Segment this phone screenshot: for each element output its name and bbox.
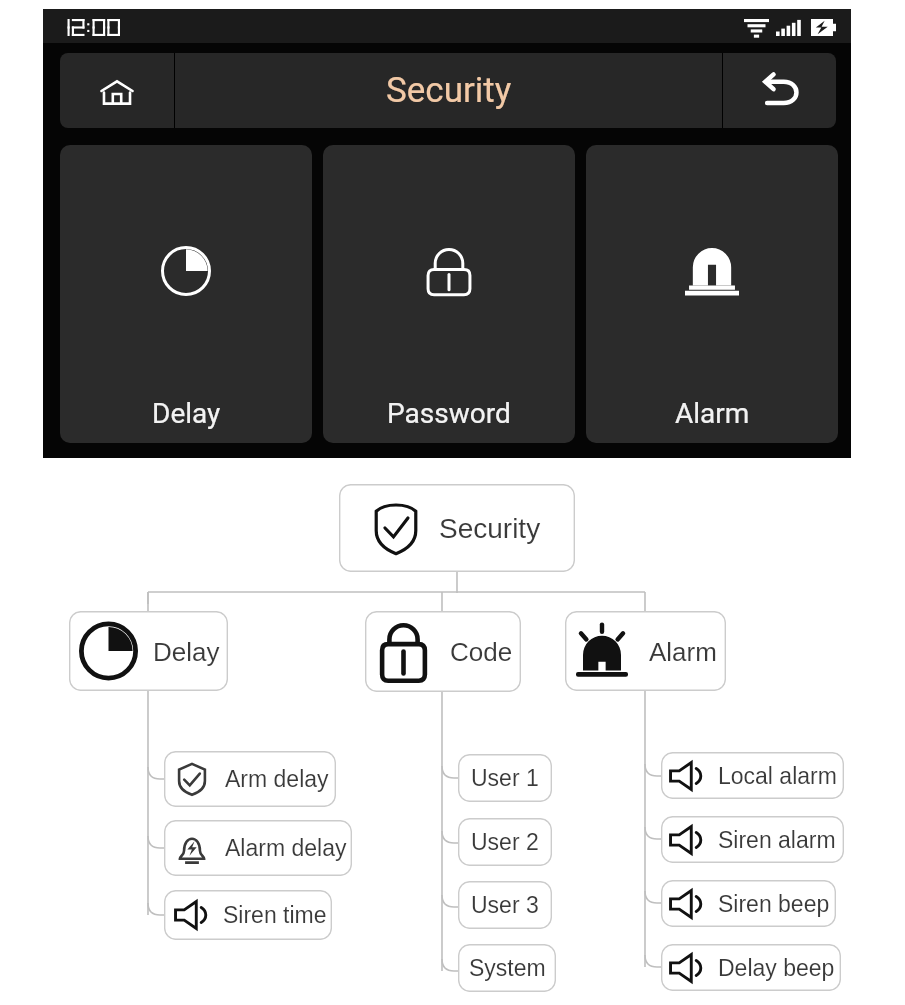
staticText: Alarm	[649, 637, 717, 666]
button[interactable]: Siren beep	[661, 880, 836, 927]
button[interactable]: Siren time	[164, 890, 332, 940]
staticText: User 1	[471, 765, 539, 791]
staticText: Local alarm	[718, 763, 837, 789]
button[interactable]: Delay	[60, 145, 312, 443]
staticText: Delay	[153, 637, 220, 666]
button[interactable]: Alarm delay	[164, 820, 352, 876]
staticText: System	[469, 955, 546, 981]
button[interactable]: Security	[175, 53, 722, 128]
staticText: Delay beep	[718, 955, 835, 981]
button[interactable]: User 1	[458, 754, 552, 802]
staticText: Security	[386, 70, 512, 111]
button[interactable]: Arm delay	[164, 751, 336, 807]
staticText: Password	[387, 397, 511, 430]
staticText: Security	[439, 513, 541, 544]
button[interactable]: User 2	[458, 818, 552, 866]
button[interactable]: System	[458, 944, 556, 992]
staticText: Siren time	[223, 902, 327, 928]
staticText: Siren beep	[718, 891, 830, 917]
button[interactable]: User 3	[458, 881, 552, 929]
staticText: Alarm	[675, 397, 750, 430]
button[interactable]: Local alarm	[661, 752, 844, 799]
staticText: Code	[450, 637, 513, 666]
staticText: Delay	[152, 397, 221, 430]
button[interactable]: Delay beep	[661, 944, 841, 991]
button[interactable]: Back	[723, 53, 836, 128]
button[interactable]: Password	[323, 145, 575, 443]
staticText: Arm delay	[225, 766, 329, 792]
button[interactable]: Delay	[69, 611, 228, 691]
button[interactable]: Code	[365, 611, 521, 692]
staticText: Alarm delay	[225, 835, 347, 861]
staticText: User 2	[471, 829, 539, 855]
button[interactable]: Security	[339, 484, 575, 572]
staticText: Siren alarm	[718, 827, 836, 853]
staticText: User 3	[471, 892, 539, 918]
button[interactable]: Siren alarm	[661, 816, 844, 863]
button[interactable]: Home	[60, 53, 174, 128]
button[interactable]: Alarm	[586, 145, 838, 443]
button[interactable]: Alarm	[565, 611, 726, 691]
